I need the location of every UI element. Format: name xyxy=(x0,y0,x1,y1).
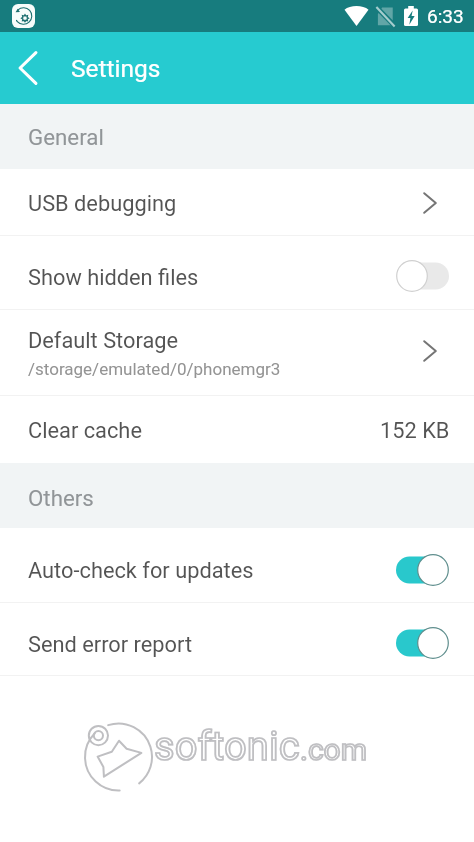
button[interactable] xyxy=(0,603,474,675)
button[interactable] xyxy=(0,310,474,395)
button[interactable] xyxy=(0,236,474,309)
staticText: .com xyxy=(300,732,368,767)
staticText: 152 KB xyxy=(380,418,450,444)
staticText: 6:33 xyxy=(427,5,464,27)
staticText: Show hidden files xyxy=(28,265,199,291)
staticText: Default Storage xyxy=(28,328,179,354)
staticText: Clear cache xyxy=(28,418,142,444)
button[interactable]: Toggle on xyxy=(396,554,449,586)
button[interactable] xyxy=(0,528,474,602)
staticText: Auto-check for updates xyxy=(28,558,254,584)
button[interactable] xyxy=(0,169,474,235)
staticText: /storage/emulated/0/phonemgr3 xyxy=(28,359,281,379)
button[interactable] xyxy=(0,396,474,463)
button[interactable]: Back xyxy=(4,44,52,92)
staticText: Others xyxy=(28,485,94,511)
button[interactable]: Toggle on xyxy=(396,627,449,659)
button[interactable]: Toggle off xyxy=(396,260,449,292)
staticText: softonic xyxy=(154,723,300,770)
staticText: USB debugging xyxy=(28,191,177,217)
staticText: Settings xyxy=(71,54,161,83)
staticText: General xyxy=(28,124,104,150)
staticText: Send error report xyxy=(28,632,193,658)
